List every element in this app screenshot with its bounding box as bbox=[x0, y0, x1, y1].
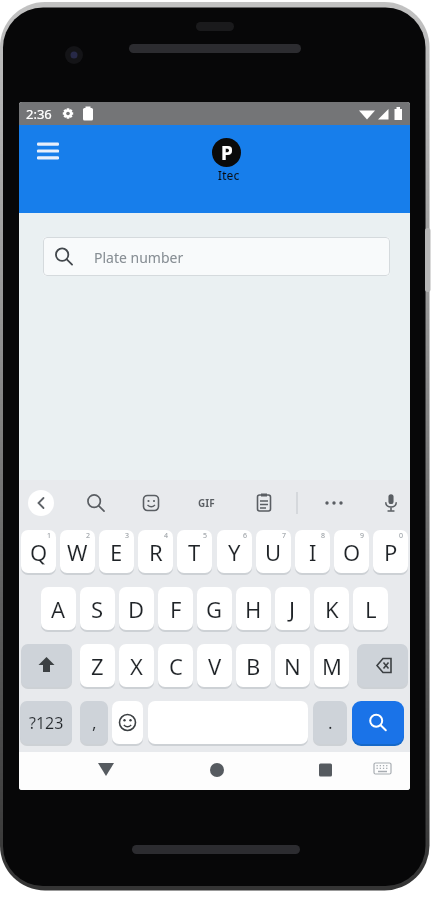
button[interactable]: O bbox=[334, 530, 369, 573]
staticText: V bbox=[208, 651, 222, 681]
button[interactable] bbox=[193, 752, 241, 790]
staticText: A bbox=[51, 594, 66, 624]
button[interactable]: X bbox=[119, 644, 154, 687]
button[interactable]: Q bbox=[21, 530, 56, 573]
button[interactable] bbox=[112, 701, 143, 744]
button[interactable]: V bbox=[197, 644, 232, 687]
button[interactable] bbox=[352, 701, 404, 744]
button[interactable] bbox=[21, 644, 72, 687]
staticText: X bbox=[130, 651, 143, 681]
staticText: I bbox=[309, 537, 317, 567]
button[interactable]: M bbox=[314, 644, 349, 687]
staticText: 2 bbox=[86, 531, 91, 541]
button[interactable] bbox=[357, 644, 408, 687]
staticText: 2:36 bbox=[26, 105, 52, 123]
staticText: H bbox=[245, 594, 262, 624]
button[interactable]: ?123 bbox=[20, 701, 72, 744]
staticText: K bbox=[325, 594, 339, 624]
staticText: 6 bbox=[243, 531, 248, 541]
staticText: 4 bbox=[164, 531, 169, 541]
button[interactable]: K bbox=[314, 587, 349, 630]
button[interactable]: N bbox=[275, 644, 310, 687]
staticText: U bbox=[265, 537, 282, 567]
staticText: Plate number bbox=[94, 248, 184, 267]
staticText: 5 bbox=[203, 531, 208, 541]
button[interactable]: U bbox=[256, 530, 291, 573]
staticText: , bbox=[92, 711, 97, 734]
staticText: 8 bbox=[321, 531, 326, 541]
staticText: Y bbox=[228, 537, 241, 567]
staticText: Z bbox=[91, 651, 104, 681]
button[interactable] bbox=[378, 490, 404, 516]
staticText: T bbox=[188, 537, 201, 567]
button[interactable]: D bbox=[119, 587, 154, 630]
staticText: G bbox=[206, 594, 223, 624]
button[interactable]: H bbox=[236, 587, 271, 630]
staticText: O bbox=[343, 537, 361, 567]
button[interactable]: I bbox=[295, 530, 330, 573]
staticText: N bbox=[284, 651, 301, 681]
button[interactable] bbox=[251, 490, 277, 516]
staticText: Itec bbox=[33, 167, 410, 183]
button[interactable]: Y bbox=[217, 530, 252, 573]
staticText: C bbox=[169, 651, 183, 681]
button[interactable]: R bbox=[138, 530, 173, 573]
staticText: F bbox=[170, 594, 182, 624]
button[interactable]: E bbox=[99, 530, 134, 573]
button[interactable]: L bbox=[353, 587, 388, 630]
button[interactable]: A bbox=[41, 587, 76, 630]
staticText: S bbox=[91, 594, 104, 624]
button[interactable]: , bbox=[80, 701, 108, 744]
staticText: D bbox=[128, 594, 145, 624]
staticText: E bbox=[110, 537, 123, 567]
button[interactable]: . bbox=[313, 701, 347, 744]
staticText: 7 bbox=[282, 531, 287, 541]
staticText: R bbox=[149, 537, 163, 567]
button[interactable] bbox=[82, 752, 130, 790]
staticText: 3 bbox=[125, 531, 130, 541]
staticText: P bbox=[384, 537, 398, 567]
button[interactable] bbox=[301, 752, 349, 790]
button[interactable]: G bbox=[197, 587, 232, 630]
button[interactable]: J bbox=[275, 587, 310, 630]
staticText: Q bbox=[30, 537, 48, 567]
button[interactable]: W bbox=[60, 530, 95, 573]
button[interactable]: GIF bbox=[193, 490, 219, 516]
button[interactable] bbox=[83, 490, 109, 516]
button[interactable]: S bbox=[80, 587, 115, 630]
button[interactable] bbox=[364, 752, 410, 790]
staticText: . bbox=[328, 711, 333, 734]
button[interactable]: C bbox=[158, 644, 193, 687]
button[interactable] bbox=[27, 138, 69, 164]
staticText: P bbox=[221, 140, 233, 166]
button[interactable] bbox=[138, 490, 164, 516]
button[interactable]: Z bbox=[80, 644, 115, 687]
staticText: 9 bbox=[360, 531, 365, 541]
button[interactable]: P bbox=[373, 530, 408, 573]
button[interactable]: Plate number bbox=[43, 237, 390, 276]
staticText: GIF bbox=[198, 496, 215, 510]
staticText: 0 bbox=[399, 531, 404, 541]
staticText: M bbox=[322, 651, 342, 681]
staticText: W bbox=[67, 537, 88, 567]
button[interactable] bbox=[321, 490, 347, 516]
staticText: ?123 bbox=[29, 712, 64, 734]
button[interactable]: B bbox=[236, 644, 271, 687]
staticText: J bbox=[289, 594, 296, 624]
button[interactable]: F bbox=[158, 587, 193, 630]
staticText: 1 bbox=[47, 531, 52, 541]
staticText: B bbox=[246, 651, 261, 681]
button[interactable] bbox=[28, 490, 54, 516]
staticText: L bbox=[365, 594, 377, 624]
button[interactable]: T bbox=[177, 530, 212, 573]
